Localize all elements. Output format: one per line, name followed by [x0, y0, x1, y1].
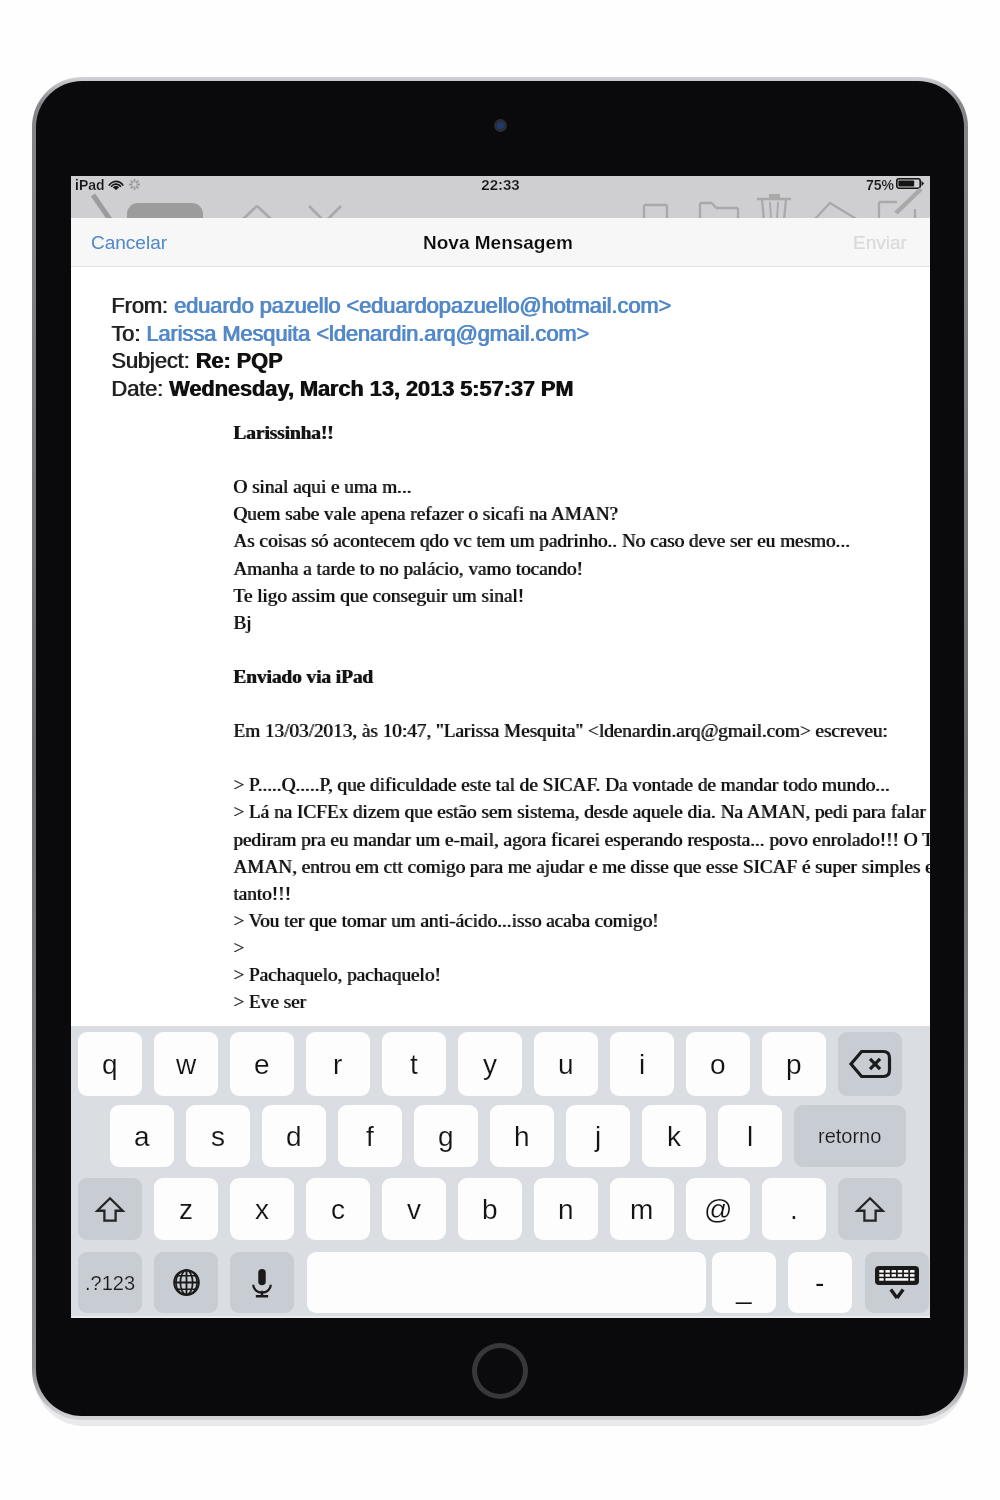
- staticText: s: [211, 1121, 225, 1152]
- staticText: Amanha a tarde to no palácio, vamo tocan…: [233, 558, 583, 579]
- staticText: r: [333, 1049, 343, 1080]
- staticText: Date: Wednesday, March 13, 2013 5:57:37 …: [111, 376, 574, 400]
- staticText: > P.....Q.....P, que dificuldade este ta…: [234, 774, 891, 795]
- staticText: Enviado via iPad: [234, 666, 374, 687]
- staticText: AMAN, entrou em ctt comigo para me ajuda…: [233, 856, 930, 877]
- staticText: i: [639, 1049, 646, 1080]
- staticText: Nova Mensagem: [423, 232, 573, 253]
- button[interactable]: c: [306, 1178, 370, 1240]
- button[interactable]: .?123: [78, 1252, 142, 1313]
- staticText: m: [630, 1194, 654, 1225]
- button[interactable]: a: [110, 1105, 174, 1167]
- staticText: Te ligo assim que conseguir um sinal!: [233, 585, 524, 606]
- button[interactable]: @: [686, 1178, 750, 1240]
- staticText: pediram pra eu mandar um e-mail, agora f…: [234, 829, 930, 850]
- staticText: Amanha a tarde to no palácio, vamo tocan…: [234, 558, 584, 579]
- staticText: x: [255, 1194, 269, 1225]
- staticText: > Pachaquelo, pachaquelo!: [234, 964, 442, 985]
- staticText: >: [233, 937, 244, 958]
- button[interactable]: retorno: [794, 1105, 906, 1167]
- staticText: Enviado via iPad: [233, 666, 373, 687]
- button[interactable]: Hide keyboard: [865, 1252, 929, 1313]
- staticText: Em 13/03/2013, às 10:47, "Larissa Mesqui…: [234, 720, 889, 741]
- staticText: Em 13/03/2013, às 10:47, "Larissa Mesqui…: [233, 720, 888, 741]
- staticText: From: eduardo pazuello <eduardopazuello@…: [112, 293, 672, 317]
- staticText: Cancelar: [91, 232, 168, 253]
- button[interactable]: Shift: [838, 1178, 902, 1240]
- staticText: n: [558, 1194, 574, 1225]
- staticText: _: [736, 1273, 752, 1304]
- staticText: Te ligo assim que conseguir um sinal!: [234, 585, 525, 606]
- button[interactable]: y: [458, 1032, 522, 1096]
- button[interactable]: Enviar: [837, 225, 930, 260]
- staticText: As coisas só acontecem qdo vc tem um pad…: [234, 530, 851, 551]
- button[interactable]: i: [610, 1032, 674, 1096]
- button[interactable]: v: [382, 1178, 446, 1240]
- staticText: Quem sabe vale apena refazer o sicafi na…: [234, 503, 619, 524]
- staticText: g: [438, 1121, 454, 1152]
- staticText: >: [234, 937, 245, 958]
- button[interactable]: s: [186, 1105, 250, 1167]
- button[interactable]: Delete: [838, 1032, 902, 1096]
- button[interactable]: n: [534, 1178, 598, 1240]
- staticText: Subject: Re: PQP: [112, 348, 284, 372]
- button[interactable]: Change keyboard: [154, 1252, 218, 1313]
- staticText: Larissinha!!: [234, 422, 335, 443]
- button[interactable]: r: [306, 1032, 370, 1096]
- button[interactable]: o: [686, 1032, 750, 1096]
- button[interactable]: t: [382, 1032, 446, 1096]
- staticText: retorno: [818, 1125, 882, 1147]
- staticText: t: [410, 1049, 418, 1080]
- button[interactable]: q: [78, 1032, 142, 1096]
- button[interactable]: .: [762, 1178, 826, 1240]
- staticText: l: [747, 1121, 754, 1152]
- staticText: Bj: [234, 612, 253, 633]
- staticText: -: [815, 1267, 825, 1298]
- button[interactable]: _: [712, 1252, 776, 1313]
- button[interactable]: w: [154, 1032, 218, 1096]
- button[interactable]: l: [718, 1105, 782, 1167]
- staticText: To: Larissa Mesquita <ldenardin.arq@gmai…: [111, 321, 589, 345]
- button[interactable]: h: [490, 1105, 554, 1167]
- button[interactable]: Dictate: [230, 1252, 294, 1313]
- staticText: h: [514, 1121, 530, 1152]
- button[interactable]: j: [566, 1105, 630, 1167]
- button[interactable]: k: [642, 1105, 706, 1167]
- staticText: q: [102, 1049, 118, 1080]
- staticText: .: [790, 1194, 798, 1225]
- button[interactable]: u: [534, 1032, 598, 1096]
- button[interactable]: x: [230, 1178, 294, 1240]
- staticText: > Pachaquelo, pachaquelo!: [233, 964, 441, 985]
- button[interactable]: m: [610, 1178, 674, 1240]
- staticText: Quem sabe vale apena refazer o sicafi na…: [233, 503, 618, 524]
- staticText: z: [179, 1194, 193, 1225]
- staticText: Date: Wednesday, March 13, 2013 5:57:37 …: [112, 376, 575, 400]
- button[interactable]: f: [338, 1105, 402, 1167]
- staticText: AMAN, entrou em ctt comigo para me ajuda…: [234, 856, 930, 877]
- staticText: f: [366, 1121, 374, 1152]
- button[interactable]: g: [414, 1105, 478, 1167]
- staticText: To: Larissa Mesquita <ldenardin.arq@gmai…: [112, 321, 590, 345]
- button[interactable]: z: [154, 1178, 218, 1240]
- staticText: > Lá na ICFEx dizem que estão sem sistem…: [233, 801, 926, 822]
- staticText: > Vou ter que tomar um anti-ácido...isso…: [233, 910, 659, 931]
- staticText: tanto!!!: [233, 883, 291, 904]
- staticText: y: [483, 1049, 497, 1080]
- staticText: e: [254, 1049, 270, 1080]
- button[interactable]: Cancelar: [71, 225, 184, 260]
- staticText: 22:33: [71, 176, 930, 193]
- button[interactable]: -: [788, 1252, 852, 1313]
- button[interactable]: b: [458, 1178, 522, 1240]
- button[interactable]: Shift: [78, 1178, 142, 1240]
- button[interactable]: p: [762, 1032, 826, 1096]
- staticText: Larissinha!!: [233, 422, 334, 443]
- staticText: O sinal aqui e uma m...: [234, 476, 412, 497]
- staticText: From: eduardo pazuello <eduardopazuello@…: [111, 293, 671, 317]
- button[interactable]: e: [230, 1032, 294, 1096]
- button[interactable]: d: [262, 1105, 326, 1167]
- staticText: d: [286, 1121, 302, 1152]
- staticText: j: [595, 1121, 602, 1152]
- staticText: .?123: [85, 1272, 136, 1294]
- staticText: iPad: [75, 177, 105, 193]
